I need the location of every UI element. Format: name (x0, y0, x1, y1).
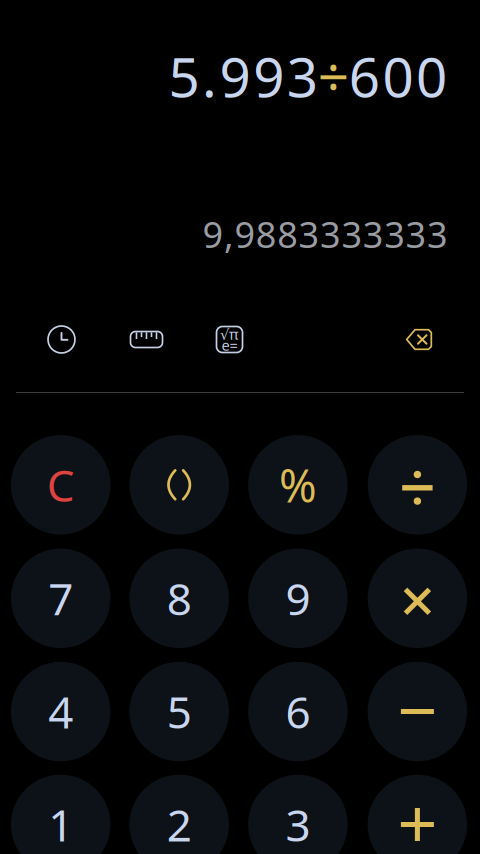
button[interactable]: 5 (129, 662, 229, 761)
staticText: 6 (285, 682, 310, 741)
staticText: 2 (167, 795, 192, 854)
button[interactable]: Minus (368, 662, 467, 761)
staticText: 9,9883333333 (203, 210, 448, 258)
staticText: 5 (167, 682, 192, 741)
button[interactable]: 2 (129, 775, 229, 854)
button[interactable]: C (11, 435, 110, 535)
button[interactable]: 6 (248, 662, 348, 761)
button[interactable]: Divide (368, 435, 467, 535)
staticText: 7 (48, 569, 73, 627)
button[interactable]: 7 (11, 548, 110, 648)
staticText: 5.993 (168, 40, 318, 112)
staticText: e= (221, 335, 237, 355)
staticText: C (47, 456, 75, 514)
staticText: 600 (349, 40, 447, 112)
staticText: √π (220, 324, 239, 344)
button[interactable]: 8 (129, 548, 229, 648)
staticText: 9 (285, 569, 310, 627)
button[interactable]: Scientific functions (207, 317, 251, 361)
button[interactable]: Unit converter (124, 317, 168, 361)
staticText: ÷ (318, 40, 349, 112)
staticText: 4 (48, 682, 73, 741)
button[interactable]: 3 (248, 775, 348, 854)
button[interactable]: 1 (11, 775, 110, 854)
button[interactable]: Delete (397, 317, 441, 361)
button[interactable]: % (248, 435, 348, 535)
button[interactable]: 9 (248, 548, 348, 648)
button[interactable]: History (39, 317, 83, 361)
button[interactable]: 4 (11, 662, 110, 761)
button[interactable]: Multiply (368, 548, 467, 648)
button[interactable]: Parentheses (129, 435, 229, 535)
button[interactable]: Plus (368, 775, 467, 854)
staticText: 8 (167, 569, 192, 627)
staticText: 3 (285, 795, 310, 854)
staticText: % (279, 455, 317, 515)
staticText: 1 (48, 795, 73, 854)
